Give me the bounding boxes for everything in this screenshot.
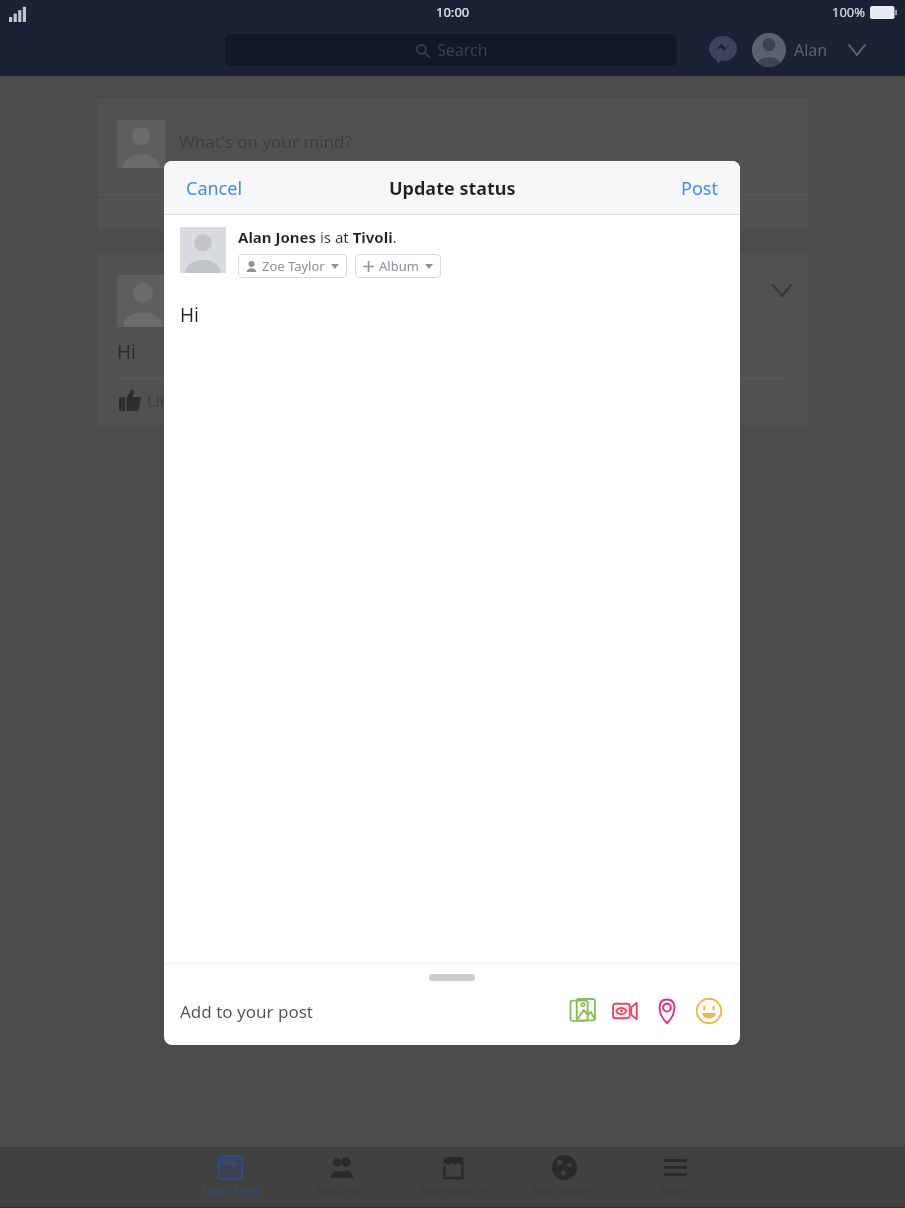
button[interactable]: Marketplace bbox=[408, 1146, 498, 1208]
staticText: Update status bbox=[389, 176, 516, 201]
button[interactable]: More bbox=[630, 1146, 720, 1208]
staticText: News Feed bbox=[202, 1183, 259, 1198]
button[interactable]: Account menu bbox=[842, 35, 872, 65]
button[interactable]: Search bbox=[225, 34, 677, 66]
staticText: What's on your mind? bbox=[179, 130, 352, 153]
staticText: Hi bbox=[117, 339, 136, 365]
staticText: Alan Jones is at Tivoli. bbox=[238, 227, 397, 247]
button[interactable]: Messenger bbox=[706, 33, 740, 67]
staticText: 100% bbox=[832, 3, 866, 21]
staticText: Album bbox=[379, 257, 419, 275]
button[interactable]: News Feed bbox=[185, 1146, 275, 1208]
button[interactable]: Requests bbox=[296, 1146, 386, 1208]
button[interactable]: Cancel bbox=[164, 161, 265, 215]
button[interactable]: Post bbox=[659, 161, 740, 215]
staticText: Alan bbox=[794, 39, 828, 61]
button[interactable]: Add photo bbox=[562, 990, 604, 1032]
staticText: Search bbox=[437, 39, 488, 61]
staticText: Post bbox=[681, 176, 718, 201]
button[interactable] bbox=[752, 33, 786, 67]
button[interactable]: Feeling bbox=[688, 990, 730, 1032]
button[interactable]: Check in bbox=[646, 990, 688, 1032]
button[interactable]: Notifications bbox=[519, 1146, 609, 1208]
button[interactable]: Go live bbox=[604, 990, 646, 1032]
staticText: 10:00 bbox=[436, 3, 470, 21]
button[interactable]: Album bbox=[355, 254, 441, 278]
staticText: Zoe Taylor bbox=[262, 257, 325, 275]
staticText: Hi bbox=[180, 302, 199, 328]
staticText: Cancel bbox=[186, 176, 243, 201]
staticText: Add to your post bbox=[180, 1000, 313, 1023]
button[interactable]: Zoe Taylor bbox=[238, 254, 347, 278]
staticText: Like bbox=[147, 390, 178, 412]
